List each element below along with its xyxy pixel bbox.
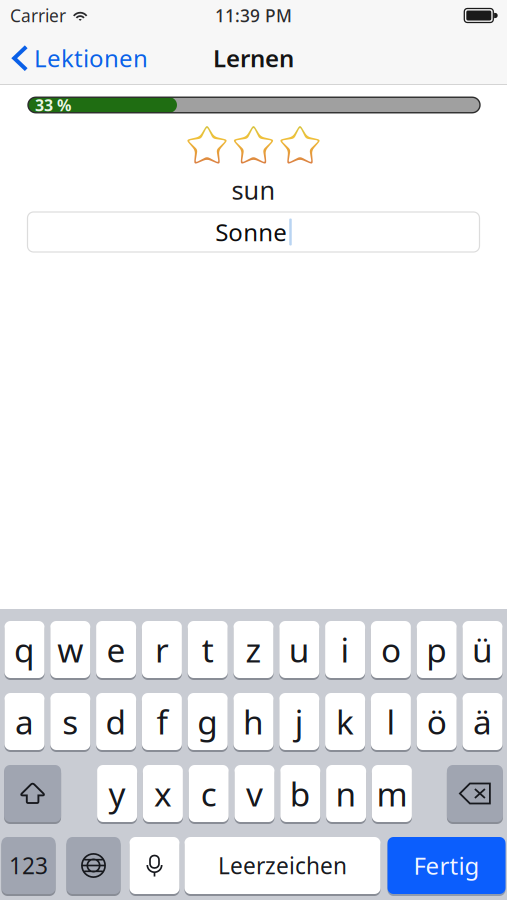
- staticText: 11:39 PM: [215, 4, 292, 27]
- button[interactable]: n: [326, 765, 366, 824]
- staticText: i: [341, 627, 350, 672]
- staticText: j: [295, 699, 304, 744]
- button[interactable]: Delete: [447, 765, 503, 824]
- staticText: f: [156, 699, 167, 744]
- button[interactable]: u: [279, 621, 319, 680]
- staticText: h: [243, 699, 264, 744]
- button[interactable]: Dictation: [129, 837, 179, 896]
- button[interactable]: l: [371, 693, 411, 752]
- button[interactable]: z: [233, 621, 273, 680]
- button[interactable]: x: [143, 765, 183, 824]
- button[interactable]: d: [96, 693, 136, 752]
- staticText: g: [197, 699, 218, 744]
- button[interactable]: c: [189, 765, 229, 824]
- staticText: ä: [473, 699, 492, 744]
- staticText: l: [386, 699, 395, 744]
- staticText: a: [15, 699, 34, 744]
- staticText: y: [109, 771, 126, 816]
- staticText: k: [336, 699, 354, 744]
- button[interactable]: Lektionen: [0, 31, 158, 85]
- staticText: v: [246, 771, 263, 816]
- button[interactable]: Fertig: [387, 837, 505, 896]
- staticText: Sonne: [215, 216, 287, 248]
- button[interactable]: v: [234, 765, 274, 824]
- button[interactable]: Leerzeichen: [184, 837, 380, 896]
- staticText: d: [106, 699, 127, 744]
- button[interactable]: 123: [1, 837, 55, 896]
- staticText: o: [381, 627, 401, 672]
- staticText: ü: [472, 627, 493, 672]
- staticText: t: [202, 627, 214, 672]
- button[interactable]: ü: [462, 621, 502, 680]
- staticText: q: [14, 627, 35, 672]
- button[interactable]: e: [96, 621, 136, 680]
- staticText: sun: [231, 173, 275, 207]
- button[interactable]: w: [50, 621, 90, 680]
- button[interactable]: s: [50, 693, 90, 752]
- staticText: u: [289, 627, 310, 672]
- staticText: s: [62, 699, 78, 744]
- button[interactable]: m: [372, 765, 412, 824]
- staticText: b: [290, 771, 311, 816]
- button[interactable]: k: [325, 693, 365, 752]
- button[interactable]: p: [417, 621, 457, 680]
- staticText: w: [57, 627, 83, 672]
- button[interactable]: h: [233, 693, 273, 752]
- staticText: z: [245, 627, 261, 672]
- button[interactable]: a: [4, 693, 44, 752]
- staticText: Lektionen: [34, 42, 148, 74]
- staticText: x: [154, 771, 172, 816]
- staticText: Lernen: [213, 42, 294, 74]
- staticText: r: [155, 627, 169, 672]
- staticText: m: [376, 771, 407, 816]
- button[interactable]: i: [325, 621, 365, 680]
- staticText: Fertig: [413, 850, 479, 881]
- button[interactable]: r: [142, 621, 182, 680]
- staticText: Leerzeichen: [218, 850, 347, 880]
- button[interactable]: t: [188, 621, 228, 680]
- button[interactable]: g: [188, 693, 228, 752]
- staticText: Carrier: [10, 4, 66, 27]
- button[interactable]: ä: [462, 693, 502, 752]
- button[interactable]: j: [279, 693, 319, 752]
- button[interactable]: q: [4, 621, 44, 680]
- button[interactable]: Shift: [4, 765, 61, 824]
- staticText: p: [426, 627, 447, 672]
- button[interactable]: o: [371, 621, 411, 680]
- button[interactable]: ö: [417, 693, 457, 752]
- staticText: c: [201, 771, 217, 816]
- staticText: 33 %: [35, 94, 71, 116]
- staticText: e: [107, 627, 126, 672]
- button[interactable]: b: [280, 765, 320, 824]
- button[interactable]: f: [142, 693, 182, 752]
- button[interactable]: y: [97, 765, 137, 824]
- button[interactable]: Next keyboard: [66, 837, 120, 896]
- staticText: ö: [427, 699, 447, 744]
- staticText: n: [336, 771, 357, 816]
- staticText: 123: [9, 850, 48, 880]
